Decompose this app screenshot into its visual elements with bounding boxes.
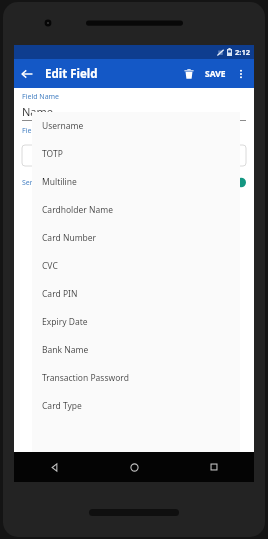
staticText: Cardholder Name — [42, 204, 114, 216]
button[interactable]: Multiline — [32, 168, 240, 196]
staticText: Edit Field — [45, 66, 98, 82]
staticText: Transaction Password — [42, 372, 129, 384]
staticText: Sensitive — [22, 178, 52, 188]
button[interactable]: Cardholder Name — [32, 196, 240, 224]
button[interactable]: More options — [230, 63, 252, 85]
button[interactable]: Back — [14, 61, 40, 87]
staticText: Card Type — [42, 400, 82, 412]
staticText: Field Type — [22, 126, 55, 136]
button[interactable]: Card Number — [32, 224, 240, 252]
staticText: Multiline — [42, 176, 77, 188]
staticText: Expiry Date — [42, 316, 88, 328]
button[interactable]: Delete — [177, 62, 201, 86]
button[interactable]: Recent apps — [174, 452, 254, 482]
button[interactable]: SAVE — [201, 61, 230, 87]
staticText: Name — [22, 104, 54, 119]
button[interactable] — [22, 145, 246, 166]
button[interactable]: Username — [32, 112, 240, 140]
staticText: Username — [42, 120, 84, 132]
button[interactable]: Sensitive toggle — [227, 177, 246, 188]
button[interactable]: Transaction Password — [32, 364, 240, 392]
button[interactable]: Card Type — [32, 392, 240, 420]
staticText: Card Number — [42, 232, 97, 244]
staticText: Card PIN — [42, 288, 78, 300]
button[interactable]: Card PIN — [32, 280, 240, 308]
button[interactable]: Expiry Date — [32, 308, 240, 336]
button[interactable]: TOTP — [32, 140, 240, 168]
staticText: 2:12 — [235, 47, 250, 57]
button[interactable]: Back — [14, 452, 94, 482]
button[interactable]: CVC — [32, 252, 240, 280]
button[interactable]: Home — [94, 452, 174, 482]
staticText: Field Name — [22, 92, 60, 102]
staticText: SAVE — [205, 68, 226, 80]
staticText: TOTP — [42, 148, 63, 160]
staticText: Bank Name — [42, 344, 89, 356]
staticText: CVC — [42, 260, 58, 272]
button[interactable]: Bank Name — [32, 336, 240, 364]
